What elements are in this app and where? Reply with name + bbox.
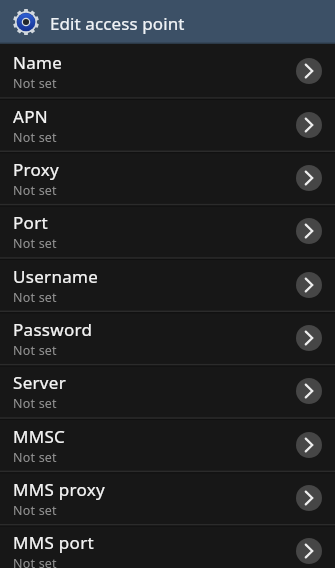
staticText: Not set: [13, 75, 57, 92]
button[interactable]: MMS proxy: [0, 471, 335, 524]
button[interactable]: Password: [0, 311, 335, 364]
staticText: Not set: [13, 289, 57, 306]
button[interactable]: Username: [0, 258, 335, 311]
staticText: Username: [13, 265, 99, 288]
staticText: Server: [13, 371, 66, 394]
other: Open Proxy: [296, 165, 322, 191]
button[interactable]: Proxy: [0, 151, 335, 204]
staticText: Not set: [13, 342, 57, 359]
staticText: Name: [13, 51, 63, 74]
button[interactable]: MMS port: [0, 524, 335, 568]
staticText: Not set: [13, 502, 57, 519]
other: Open Name: [296, 58, 322, 84]
other: Open APN: [296, 112, 322, 138]
other: Open MMS port: [296, 538, 322, 564]
button[interactable]: Port: [0, 204, 335, 257]
staticText: Not set: [13, 449, 57, 466]
staticText: Port: [13, 211, 48, 234]
other: Open Username: [296, 272, 322, 298]
staticText: Edit access point: [50, 12, 185, 35]
staticText: MMS proxy: [13, 478, 106, 501]
staticText: Not set: [13, 395, 57, 412]
staticText: Password: [13, 318, 93, 341]
staticText: Proxy: [13, 158, 60, 181]
staticText: Not set: [13, 182, 57, 199]
other: Open MMSC: [296, 432, 322, 458]
staticText: MMSC: [13, 425, 66, 448]
staticText: Not set: [13, 129, 57, 146]
button[interactable]: Server: [0, 364, 335, 417]
other: Open Port: [296, 218, 322, 244]
button[interactable]: MMSC: [0, 418, 335, 471]
button[interactable]: APN: [0, 98, 335, 151]
staticText: APN: [13, 105, 48, 128]
staticText: MMS port: [13, 531, 94, 554]
staticText: Not set: [13, 555, 57, 568]
staticText: Not set: [13, 235, 57, 252]
other: Open Password: [296, 325, 322, 351]
other: Open Server: [296, 378, 322, 404]
other: Open MMS proxy: [296, 485, 322, 511]
button[interactable]: Name: [0, 44, 335, 97]
